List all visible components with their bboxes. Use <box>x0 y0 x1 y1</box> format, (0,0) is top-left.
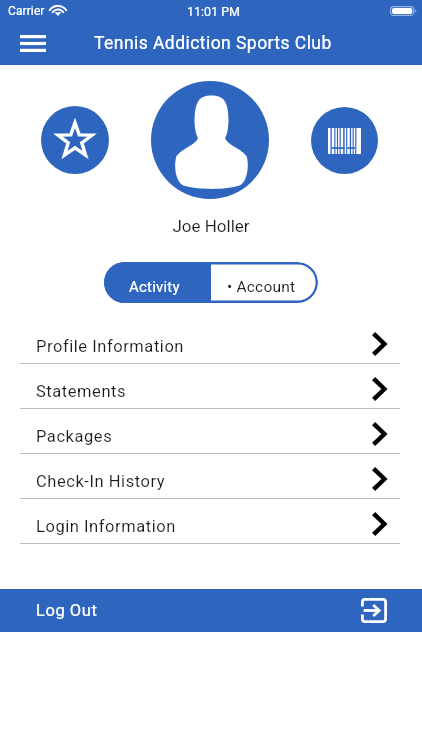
button[interactable]: Statements <box>0 364 422 409</box>
staticText: Log Out <box>36 601 98 620</box>
staticText: Carrier <box>8 4 45 18</box>
button[interactable]: • Account <box>211 262 318 303</box>
button[interactable]: Barcode <box>311 107 378 174</box>
staticText: Tennis Addiction Sports Club <box>94 33 332 54</box>
button[interactable]: Open navigation menu <box>11 22 55 65</box>
staticText: Joe Holler <box>0 216 422 236</box>
staticText: Check-In History <box>36 472 166 491</box>
staticText: Packages <box>36 427 113 446</box>
staticText: Activity <box>129 278 180 296</box>
button[interactable]: Profile photo <box>151 81 269 199</box>
button[interactable]: Profile Information <box>0 319 422 364</box>
staticText: 11:01 PM <box>187 4 241 19</box>
button[interactable]: Log Out <box>0 589 422 632</box>
staticText: Statements <box>36 382 127 401</box>
button[interactable]: Packages <box>0 409 422 454</box>
button[interactable]: Favorites <box>41 106 109 174</box>
staticText: • Account <box>227 278 296 296</box>
staticText: Profile Information <box>36 337 185 356</box>
button[interactable]: Activity <box>104 262 211 303</box>
button[interactable]: Check-In History <box>0 454 422 499</box>
staticText: Login Information <box>36 517 176 536</box>
button[interactable]: Login Information <box>0 499 422 544</box>
